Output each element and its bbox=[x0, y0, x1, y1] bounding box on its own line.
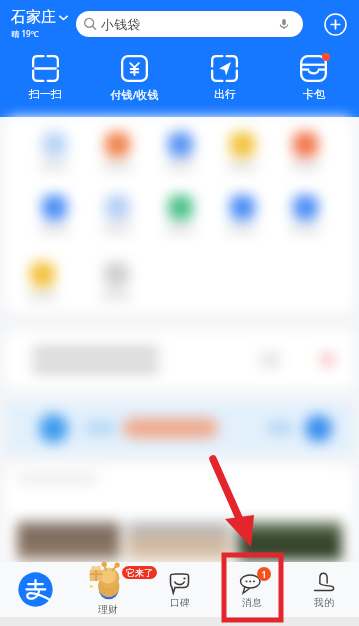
button[interactable]: 我的 bbox=[288, 562, 359, 617]
button[interactable]: 石家庄 bbox=[11, 8, 69, 39]
button[interactable]: 扫一扫 bbox=[1, 55, 90, 101]
staticText: 小钱袋 bbox=[101, 16, 140, 32]
button[interactable]: 付钱/收钱 bbox=[90, 55, 179, 102]
staticText: 扫一扫 bbox=[29, 87, 62, 101]
staticText: 它来了 bbox=[126, 567, 153, 578]
button[interactable]: 它来了 bbox=[72, 562, 143, 617]
button[interactable]: 出行 bbox=[180, 55, 269, 101]
staticText: 理财 bbox=[98, 603, 118, 616]
button[interactable]: 口碑 bbox=[144, 562, 215, 617]
staticText: 晴 19℃ bbox=[11, 28, 39, 39]
button[interactable]: 1 bbox=[216, 562, 287, 617]
staticText: 1 bbox=[261, 568, 267, 580]
staticText: 我的 bbox=[314, 596, 334, 609]
staticText: 卡包 bbox=[303, 87, 325, 101]
staticText: 石家庄 bbox=[11, 8, 56, 27]
staticText: 口碑 bbox=[170, 596, 190, 609]
staticText: 消息 bbox=[242, 596, 262, 609]
button[interactable]: 卡包 bbox=[269, 55, 358, 101]
staticText: 付钱/收钱 bbox=[110, 87, 159, 102]
button[interactable]: 首页 bbox=[0, 562, 71, 617]
staticText: 出行 bbox=[214, 87, 236, 101]
button[interactable]: 添加 bbox=[320, 9, 350, 39]
button[interactable]: 小钱袋 bbox=[76, 11, 303, 37]
